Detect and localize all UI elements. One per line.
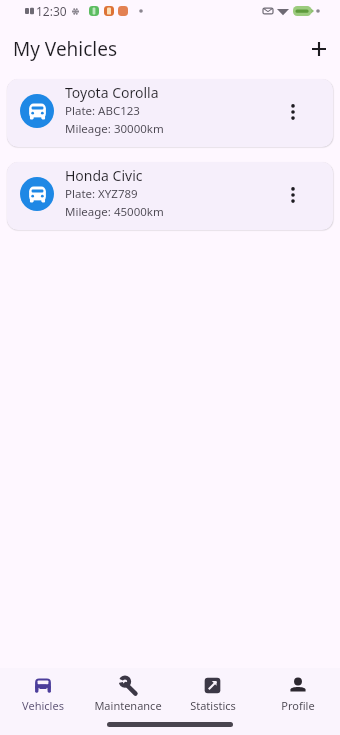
- staticText: Statistics: [190, 698, 236, 710]
- button[interactable]: Profile: [255, 668, 340, 713]
- button[interactable]: Vehicles: [0, 668, 85, 713]
- staticText: Honda Civic: [65, 166, 143, 185]
- button[interactable]: Honda Civic: [7, 162, 333, 230]
- button[interactable]: More options: [280, 182, 306, 208]
- staticText: 12:30: [36, 3, 67, 19]
- button[interactable]: Statistics: [170, 668, 255, 713]
- staticText: My Vehicles: [13, 36, 118, 62]
- staticText: Vehicles: [22, 698, 64, 710]
- button[interactable]: Toyota Corolla: [7, 79, 333, 147]
- staticText: Mileage: 30000km: [65, 121, 164, 137]
- staticText: Toyota Corolla: [65, 83, 159, 102]
- staticText: Mileage: 45000km: [65, 204, 164, 220]
- button[interactable]: Maintenance: [85, 668, 170, 713]
- staticText: Plate: XYZ789: [65, 186, 138, 202]
- staticText: Plate: ABC123: [65, 103, 140, 119]
- button[interactable]: Add vehicle: [299, 32, 333, 66]
- staticText: Maintenance: [94, 698, 162, 710]
- button[interactable]: More options: [280, 99, 306, 125]
- staticText: Profile: [281, 698, 315, 710]
